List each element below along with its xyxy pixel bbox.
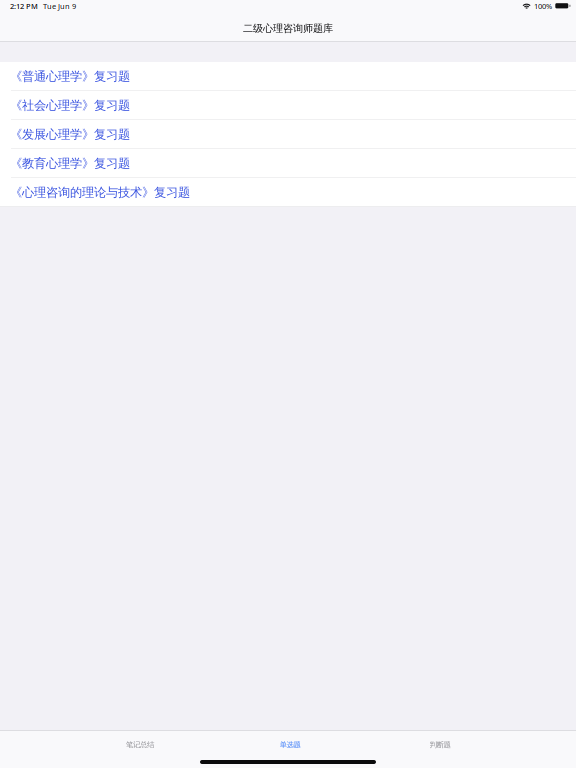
staticText: 《普通心理学》复习题 <box>10 69 130 84</box>
button[interactable]: 《心理咨询的理论与技术》复习题 <box>0 178 576 207</box>
staticText: 《发展心理学》复习题 <box>10 127 130 142</box>
staticText: 2:12 PM <box>10 1 38 11</box>
button[interactable]: 单选题 <box>215 730 365 768</box>
button[interactable]: 笔记总结 <box>65 730 215 768</box>
staticText: Tue Jun 9 <box>43 1 76 11</box>
staticText: 判断题 <box>429 740 450 749</box>
staticText: 单选题 <box>279 740 300 749</box>
button[interactable]: 判断题 <box>365 730 515 768</box>
staticText: 《心理咨询的理论与技术》复习题 <box>10 185 190 200</box>
button[interactable]: 《社会心理学》复习题 <box>0 91 576 120</box>
staticText: 笔记总结 <box>126 740 154 749</box>
button[interactable]: 《普通心理学》复习题 <box>0 62 576 91</box>
staticText: 《社会心理学》复习题 <box>10 98 130 113</box>
button[interactable]: 《发展心理学》复习题 <box>0 120 576 149</box>
staticText: 100% <box>534 1 552 11</box>
staticText: 二级心理咨询师题库 <box>243 22 333 35</box>
staticText: 《教育心理学》复习题 <box>10 156 130 171</box>
button[interactable]: 《教育心理学》复习题 <box>0 149 576 178</box>
